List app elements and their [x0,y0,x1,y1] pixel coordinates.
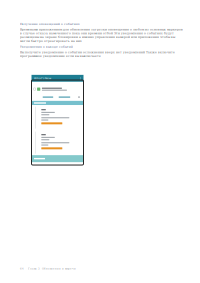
staticText: Временами приложениям для обновления заг… [20,28,183,31]
staticText: программное уведомление если вы выключае… [20,54,101,58]
staticText: Уведомления о выходе событий [20,45,73,48]
staticText: 64 [20,267,24,270]
staticText: в случае отказа намеченного пока они вре… [20,32,174,35]
staticText: могли быстро отреагировать на них [20,39,82,43]
staticText: What's New [34,77,51,80]
staticText: Получение оповещений о событиях [20,22,80,26]
staticText: размещены на экране блокировки а именно … [20,35,175,39]
staticText: Вы получите уведомление о событии осложн… [20,50,175,54]
staticText: Глава 3 Обновления и встречи [28,267,76,270]
